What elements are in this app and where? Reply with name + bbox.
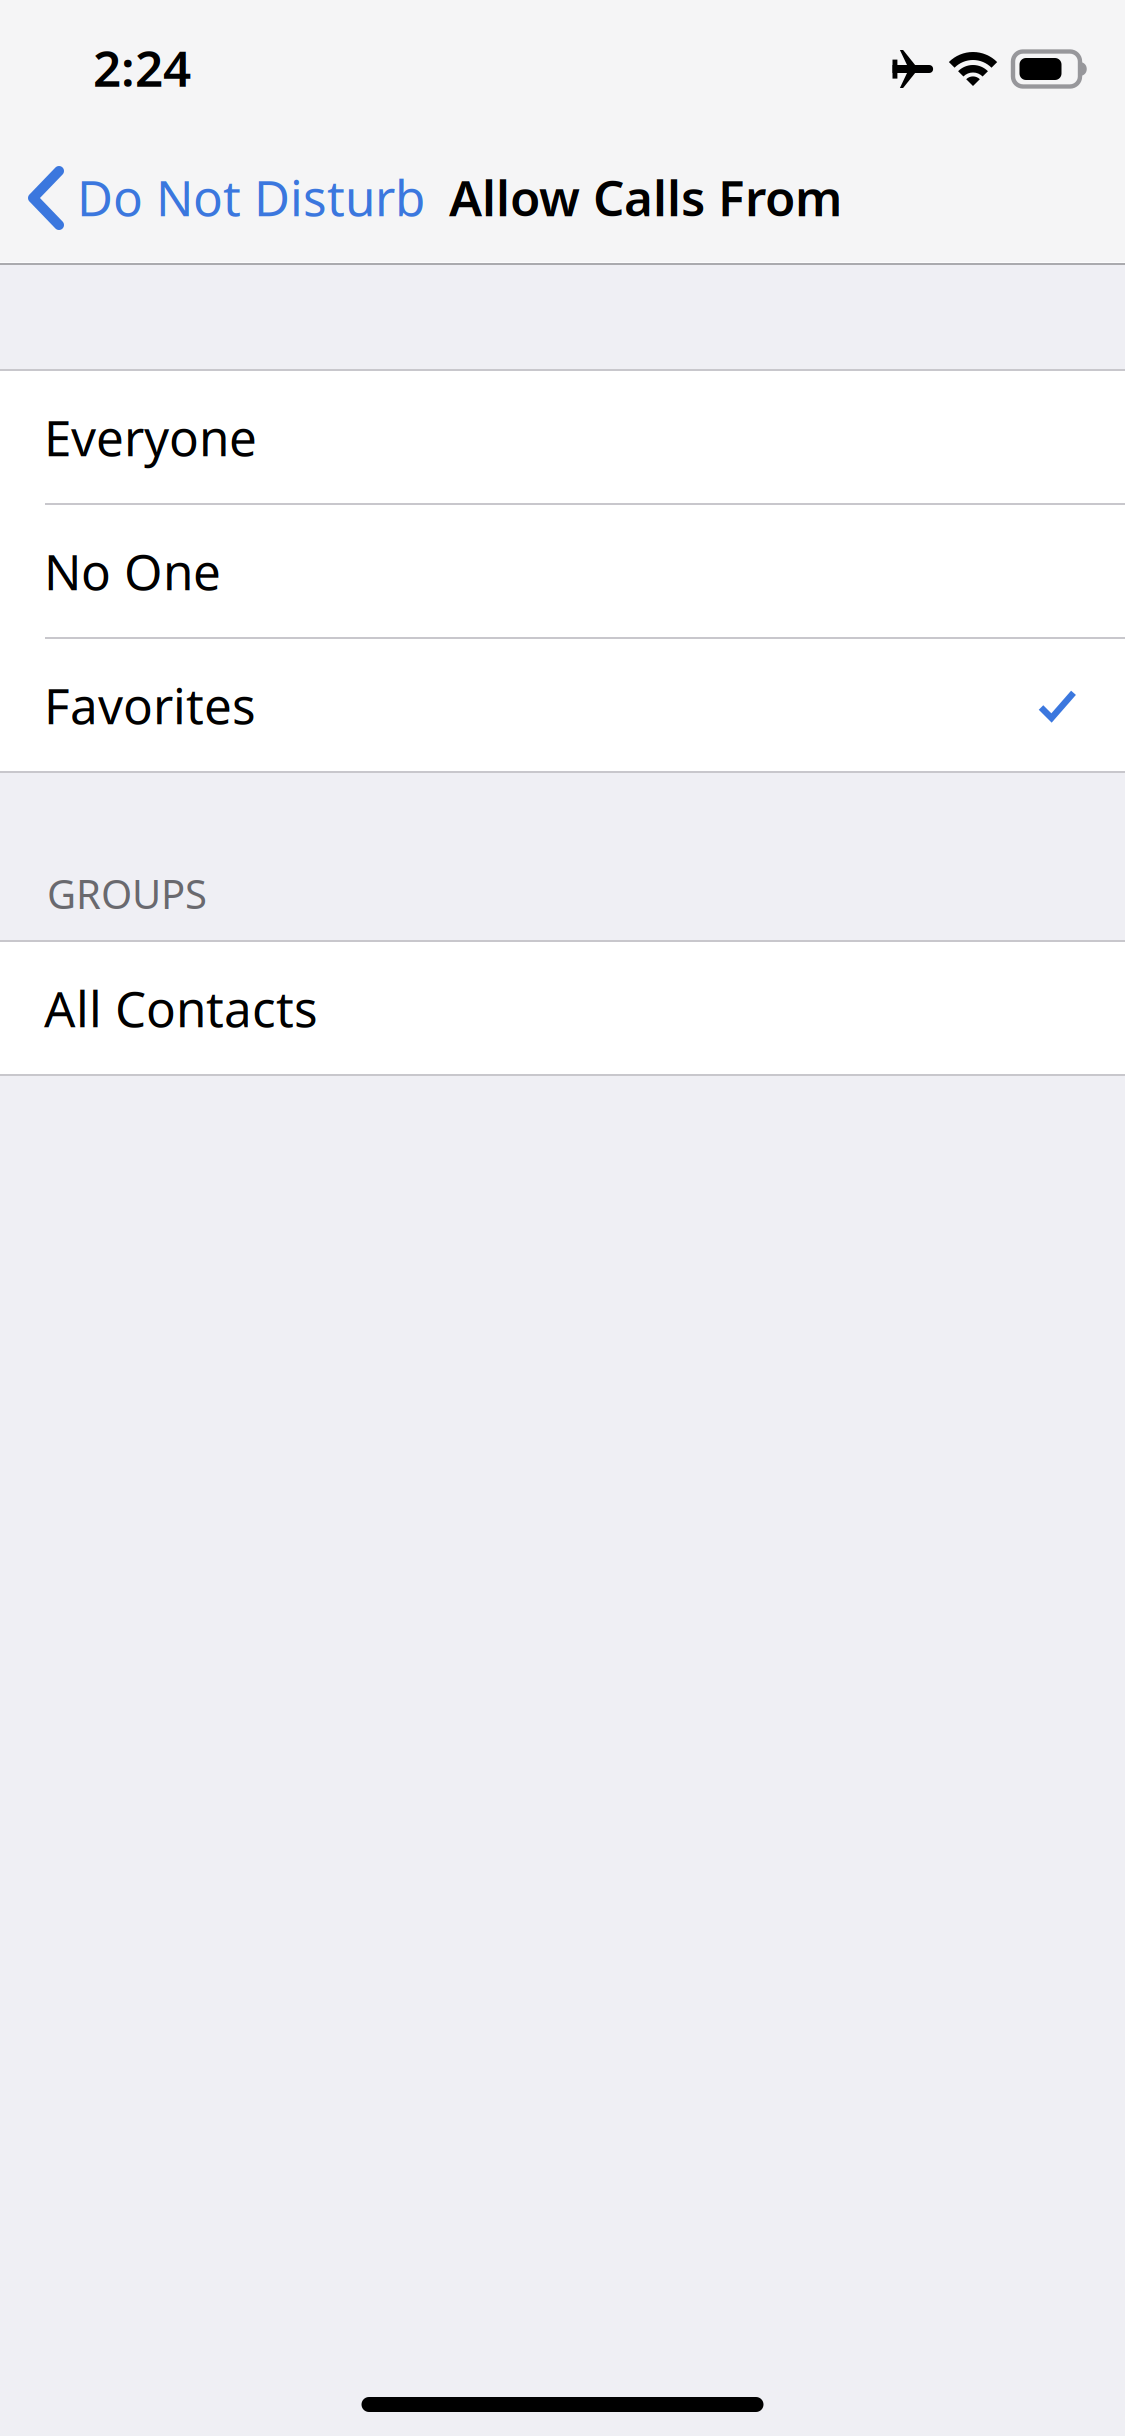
button[interactable]: All Contacts: [0, 942, 1125, 1074]
staticText: Everyone: [44, 404, 257, 470]
staticText: All Contacts: [44, 975, 318, 1041]
staticText: No One: [44, 538, 221, 604]
staticText: Allow Calls From: [449, 164, 842, 230]
staticText: Favorites: [44, 672, 256, 738]
button[interactable]: Favorites: [0, 639, 1125, 771]
button[interactable]: No One: [0, 505, 1125, 637]
staticText: Do Not Disturb: [77, 164, 425, 230]
staticText: GROUPS: [47, 867, 207, 920]
button[interactable]: Back to Do Not Disturb: [0, 132, 449, 262]
button[interactable]: Everyone: [0, 371, 1125, 503]
staticText: 2:24: [93, 35, 191, 100]
